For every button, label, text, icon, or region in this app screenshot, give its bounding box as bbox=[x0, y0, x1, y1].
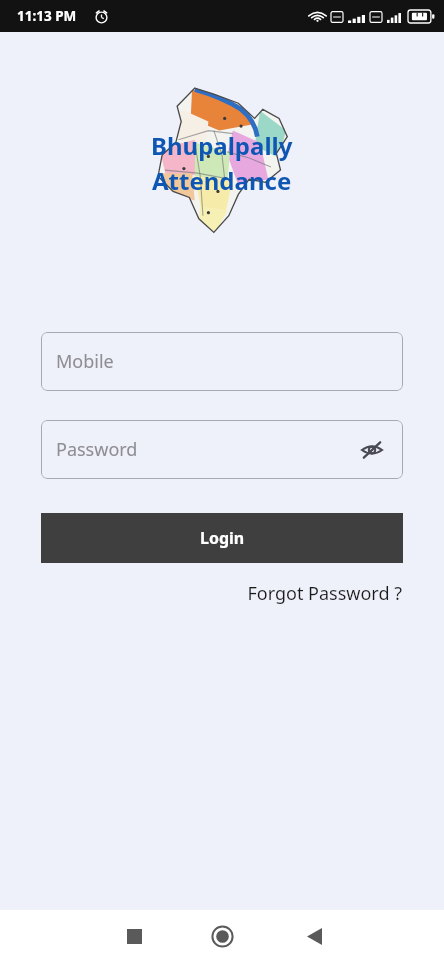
staticText: Login bbox=[200, 527, 245, 549]
staticText: Mobile bbox=[56, 349, 114, 374]
button[interactable]: Show password bbox=[355, 433, 389, 467]
button[interactable]: Password bbox=[41, 420, 403, 479]
button[interactable]: Mobile bbox=[41, 332, 403, 391]
button[interactable]: Back bbox=[292, 914, 336, 958]
button[interactable]: Forgot Password ? bbox=[243, 575, 406, 612]
staticText: Attendance bbox=[152, 164, 292, 197]
staticText: 11:13 PM bbox=[17, 7, 77, 25]
staticText: Password bbox=[56, 437, 138, 462]
staticText: Forgot Password ? bbox=[247, 581, 402, 606]
button[interactable]: Recents bbox=[112, 914, 156, 958]
button[interactable]: Login bbox=[41, 513, 403, 563]
staticText: Bhupalpally bbox=[151, 129, 293, 162]
button[interactable]: Home bbox=[200, 914, 244, 958]
